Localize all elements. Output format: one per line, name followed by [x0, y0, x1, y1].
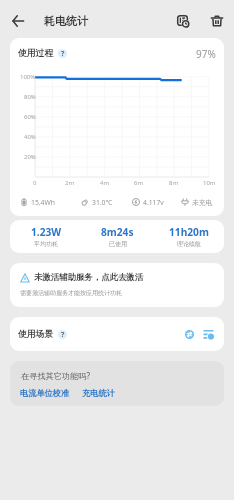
staticText: 20% [24, 153, 36, 161]
button[interactable]: Switch view [181, 326, 197, 342]
staticText: 0 [33, 179, 37, 187]
staticText: 在寻找其它功能吗? [21, 370, 91, 381]
staticText: 2m [65, 179, 75, 187]
button[interactable]: Back [6, 9, 30, 33]
staticText: 40% [24, 133, 36, 141]
button[interactable]: 充电统计 [81, 388, 116, 398]
staticText: 100% [20, 73, 36, 81]
button[interactable]: Sort by time [200, 326, 216, 342]
staticText: 80% [24, 93, 36, 101]
staticText: 使用场景 [18, 329, 54, 340]
staticText: 4.117v [143, 198, 164, 207]
staticText: 31.0℃ [92, 198, 113, 207]
button[interactable]: Help [58, 49, 67, 58]
staticText: 已使用 [109, 240, 127, 248]
button[interactable]: 电流单位校准 [19, 388, 71, 398]
staticText: 耗电统计 [44, 14, 88, 28]
staticText: 未充电 [192, 198, 213, 207]
staticText: ? [61, 49, 65, 58]
staticText: 使用过程 [18, 48, 54, 59]
button[interactable]: 11h20m [153, 225, 224, 248]
staticText: 理论续航 [177, 240, 201, 248]
button[interactable]: 未激活辅助服务，点此去激活 [10, 263, 224, 307]
button[interactable]: Help [58, 330, 67, 339]
staticText: 15.4Wh [31, 198, 56, 207]
button[interactable]: 1.23W [10, 225, 82, 248]
staticText: ? [61, 330, 65, 339]
staticText: 11h20m [169, 225, 209, 239]
staticText: 6m [134, 179, 144, 187]
staticText: 1.23W [31, 225, 62, 239]
staticText: 60% [24, 113, 36, 121]
staticText: 8m [169, 179, 179, 187]
staticText: 8m24s [101, 225, 134, 239]
button[interactable]: Delete records [205, 9, 228, 32]
staticText: 未激活辅助服务，点此去激活 [34, 272, 144, 283]
button[interactable]: 8m24s [82, 225, 153, 248]
button[interactable]: History records [171, 9, 194, 32]
staticText: 4m [100, 179, 110, 187]
staticText: 需要激活辅助服务才能按应用统计功耗 [20, 289, 122, 297]
staticText: 平均功耗 [34, 240, 58, 248]
staticText: 97% [196, 47, 216, 61]
staticText: 10m [203, 179, 216, 187]
